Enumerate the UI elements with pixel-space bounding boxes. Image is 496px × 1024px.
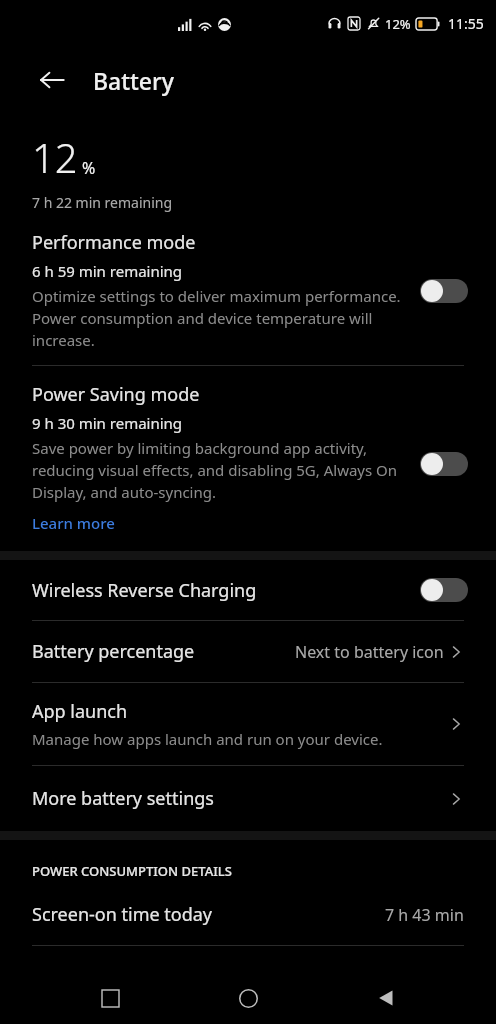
staticText: 7 h 43 min xyxy=(385,904,464,926)
button[interactable]: Wireless Reverse Charging xyxy=(0,560,496,620)
staticText: Battery percentage xyxy=(32,639,295,664)
button[interactable]: Power Saving mode toggle xyxy=(420,448,474,480)
staticText: 9 h 30 min remaining xyxy=(32,413,183,433)
button[interactable]: Learn more xyxy=(32,513,115,533)
button[interactable]: Home xyxy=(220,972,276,1024)
staticText: App launch xyxy=(32,699,128,724)
button[interactable]: Battery percentage xyxy=(0,621,496,682)
button[interactable]: More battery settings xyxy=(0,766,496,831)
staticText: 12% xyxy=(385,15,411,33)
staticText: 11:55 xyxy=(448,14,484,33)
button[interactable]: Power Saving mode xyxy=(0,366,496,551)
button[interactable]: Back xyxy=(32,60,72,100)
button[interactable]: Performance mode toggle xyxy=(420,275,474,307)
staticText: Learn more xyxy=(32,513,115,533)
staticText: Manage how apps launch and run on your d… xyxy=(32,729,383,749)
staticText: % xyxy=(82,157,96,179)
staticText: Save power by limiting background app ac… xyxy=(32,438,408,503)
button[interactable]: Back xyxy=(358,972,414,1024)
button[interactable]: Recent apps xyxy=(82,972,138,1024)
staticText: Screen-on time today xyxy=(32,902,385,927)
staticText: Power Saving mode xyxy=(32,382,200,407)
staticText: More battery settings xyxy=(32,786,448,811)
staticText: Wireless Reverse Charging xyxy=(32,578,420,603)
staticText: Performance mode xyxy=(32,230,196,255)
staticText: 7 h 22 min remaining xyxy=(32,193,173,212)
staticText: Battery xyxy=(93,65,174,96)
staticText: Optimize settings to deliver maximum per… xyxy=(32,286,408,351)
staticText: 6 h 59 min remaining xyxy=(32,261,183,281)
button[interactable]: Screen-on time today xyxy=(0,880,496,945)
button[interactable]: Wireless Reverse Charging toggle xyxy=(420,574,474,606)
button[interactable]: App launch xyxy=(0,683,496,765)
staticText: 12 xyxy=(32,130,78,184)
button[interactable]: Performance mode xyxy=(0,212,496,365)
staticText: Next to battery icon xyxy=(295,641,444,663)
staticText: POWER CONSUMPTION DETAILS xyxy=(32,862,232,880)
